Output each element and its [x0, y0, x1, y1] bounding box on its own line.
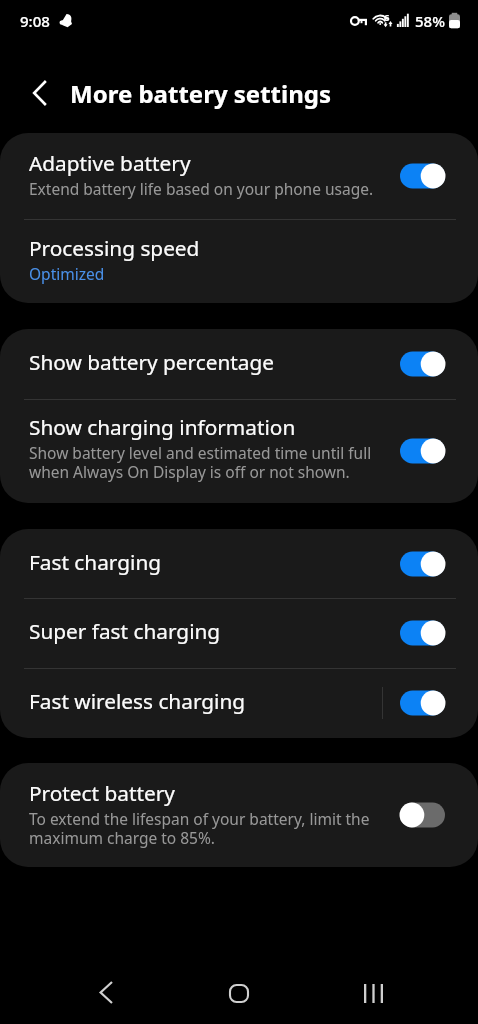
staticText: Extend battery life based on your phone … [29, 178, 374, 199]
staticText: 58% [415, 11, 445, 31]
staticText: 9:08 [20, 11, 50, 31]
staticText: Processing speed [29, 234, 200, 262]
staticText: Show charging information [29, 413, 296, 441]
button[interactable]: Switch on [400, 688, 445, 718]
staticText: More battery settings [70, 77, 332, 110]
button[interactable]: Back [66, 963, 146, 1024]
staticText: Protect battery [29, 779, 175, 807]
button[interactable]: Switch on [400, 436, 445, 466]
staticText: Super fast charging [29, 617, 221, 645]
button[interactable]: Fast charging [0, 529, 478, 598]
button[interactable]: Show charging information [0, 399, 478, 503]
button[interactable]: Switch on [400, 549, 445, 579]
button[interactable]: Processing speed [0, 219, 478, 303]
staticText: Show battery percentage [29, 348, 274, 376]
button[interactable]: Adaptive battery [0, 133, 478, 219]
button[interactable]: Show battery percentage [0, 329, 478, 399]
staticText: To extend the lifespan of your battery, … [29, 808, 400, 848]
button[interactable]: Switch on [400, 618, 445, 648]
staticText: 6 [384, 11, 390, 24]
button[interactable]: Protect battery [0, 763, 478, 867]
button[interactable]: Recent apps [333, 963, 413, 1024]
button[interactable]: Fast wireless charging [0, 668, 478, 738]
button[interactable]: Home [199, 963, 279, 1024]
button[interactable]: Navigate up [20, 73, 60, 113]
staticText: Fast wireless charging [29, 687, 246, 715]
button[interactable]: Switch off [400, 800, 445, 830]
button[interactable]: Switch on [400, 349, 445, 379]
button[interactable]: Switch on [400, 161, 445, 191]
staticText: Fast charging [29, 548, 162, 576]
staticText: Show battery level and estimated time un… [29, 442, 400, 482]
button[interactable]: Super fast charging [0, 598, 478, 668]
staticText: Optimized [29, 263, 105, 284]
staticText: Adaptive battery [29, 149, 191, 177]
